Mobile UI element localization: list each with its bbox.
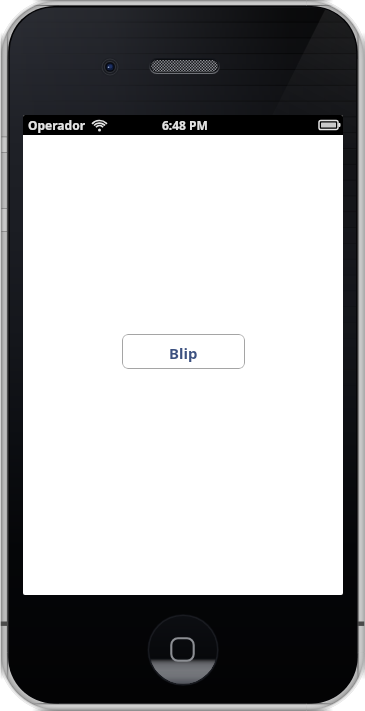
staticText: Blip bbox=[169, 343, 198, 363]
button[interactable]: Home bbox=[145, 612, 223, 690]
staticText: Operador bbox=[28, 117, 86, 133]
button[interactable]: Blip bbox=[122, 334, 245, 369]
staticText: 6:48 PM bbox=[162, 117, 208, 133]
